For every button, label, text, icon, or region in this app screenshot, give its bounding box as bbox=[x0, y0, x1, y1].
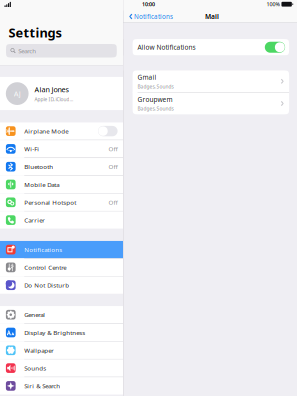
button[interactable]: Wallpaper bbox=[0, 342, 123, 359]
button[interactable]: Notifications bbox=[0, 241, 123, 258]
button[interactable]: Notifications bbox=[124, 10, 177, 22]
staticText: Do Not Disturb bbox=[24, 281, 69, 289]
button[interactable]: Sounds bbox=[0, 359, 123, 377]
button[interactable]: Do Not Disturb bbox=[0, 277, 123, 294]
staticText: Gmail bbox=[138, 73, 157, 82]
staticText: Airplane Mode bbox=[24, 127, 68, 135]
button[interactable]: Allow Notifications bbox=[265, 42, 285, 53]
button[interactable]: AJ bbox=[0, 77, 123, 110]
staticText: Mobile Data bbox=[24, 180, 59, 189]
button[interactable]: Gmail bbox=[133, 70, 289, 92]
staticText: Badges, Sounds bbox=[138, 83, 174, 90]
button[interactable]: Groupwem bbox=[133, 93, 289, 114]
button[interactable]: Wi-Fi bbox=[0, 140, 123, 158]
button[interactable]: Carrier bbox=[0, 211, 123, 229]
staticText: Apple ID, iCloud, iTunes & App St… bbox=[34, 96, 74, 103]
button[interactable]: Bluetooth bbox=[0, 158, 123, 175]
button[interactable]: Siri & Search bbox=[0, 377, 123, 395]
staticText: Groupwem bbox=[138, 95, 173, 104]
staticText: Badges, Sounds bbox=[138, 105, 174, 112]
button[interactable]: Control Centre bbox=[0, 259, 123, 276]
staticText: Notifications bbox=[134, 12, 173, 21]
button[interactable]: General bbox=[0, 306, 123, 323]
staticText: Notifications bbox=[24, 245, 62, 254]
staticText: Personal Hotspot bbox=[24, 198, 76, 206]
staticText: Wallpaper bbox=[24, 346, 54, 354]
staticText: 100% bbox=[266, 1, 279, 8]
staticText: Off bbox=[109, 162, 118, 171]
button[interactable]: Airplane Mode bbox=[0, 122, 123, 140]
staticText: 10:00 bbox=[142, 1, 155, 8]
staticText: Display & Brightness bbox=[24, 328, 85, 337]
staticText: AJ bbox=[14, 88, 21, 99]
staticText: Carrier bbox=[24, 216, 45, 224]
staticText: Control Centre bbox=[24, 263, 66, 272]
staticText: General bbox=[24, 310, 45, 319]
staticText: Siri & Search bbox=[24, 382, 60, 390]
staticText: Bluetooth bbox=[24, 162, 53, 171]
staticText: Alan Jones bbox=[34, 85, 68, 94]
staticText: Search bbox=[18, 47, 36, 55]
staticText: Off bbox=[109, 198, 118, 206]
staticText: Allow Notifications bbox=[138, 43, 196, 52]
staticText: Off bbox=[109, 145, 118, 153]
button[interactable]: Display & Brightness bbox=[0, 324, 123, 341]
button[interactable]: Mobile Data bbox=[0, 176, 123, 193]
staticText: Sounds bbox=[24, 364, 46, 372]
staticText: Settings bbox=[9, 24, 62, 41]
staticText: Mail bbox=[205, 12, 219, 21]
button[interactable]: Personal Hotspot bbox=[0, 194, 123, 211]
staticText: Wi-Fi bbox=[24, 145, 39, 153]
